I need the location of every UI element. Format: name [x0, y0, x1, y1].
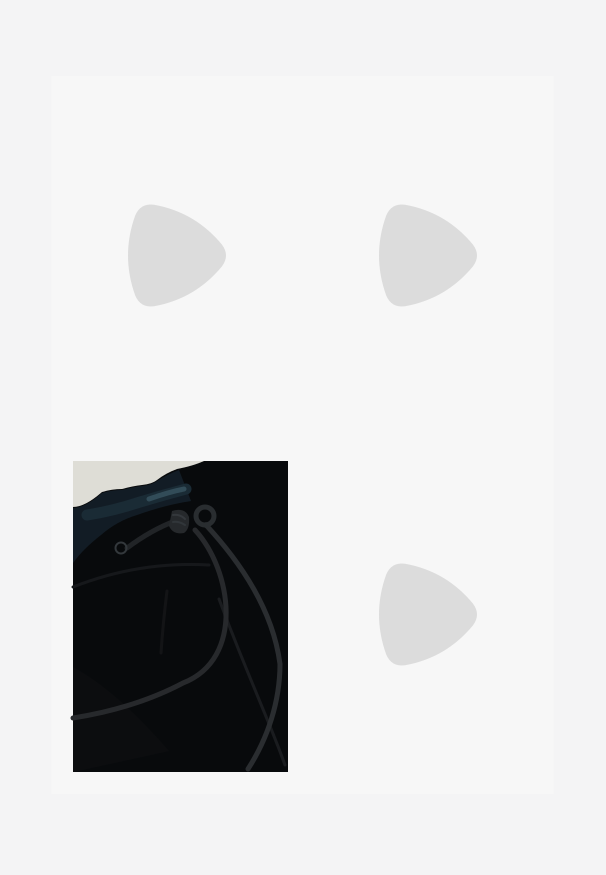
- button[interactable]: Product image placeholder: [302, 435, 553, 794]
- button[interactable]: Black drawstring trousers: [51, 435, 302, 794]
- button[interactable]: Product image placeholder: [302, 76, 553, 435]
- button[interactable]: Product image placeholder: [51, 76, 302, 435]
